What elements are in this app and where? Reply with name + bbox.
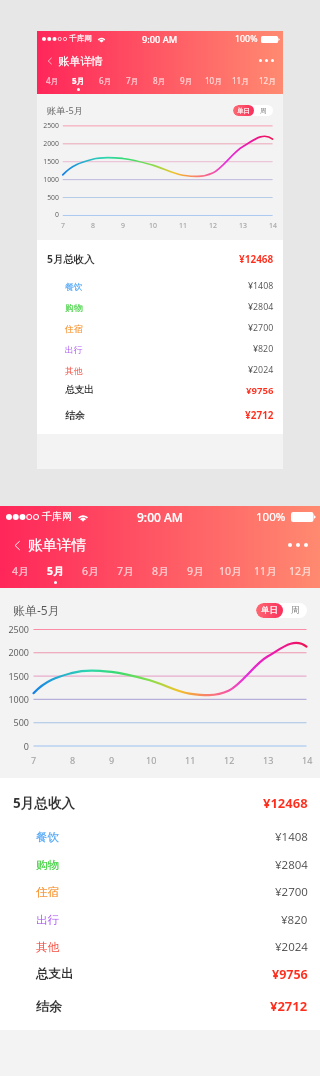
staticText: 1000 bbox=[0, 693, 29, 705]
staticText: 10 bbox=[146, 754, 157, 766]
button[interactable]: Back bbox=[37, 49, 112, 73]
staticText: 其他 bbox=[65, 365, 83, 376]
staticText: 2500 bbox=[0, 623, 29, 635]
button[interactable]: 4月 bbox=[39, 74, 65, 94]
staticText: ¥820 bbox=[253, 343, 274, 355]
staticText: 7 bbox=[31, 754, 37, 766]
button[interactable]: 6月 bbox=[92, 74, 119, 94]
button[interactable]: 结余 bbox=[37, 405, 283, 425]
button[interactable]: 10月 bbox=[213, 562, 248, 588]
button[interactable]: 结余 bbox=[0, 993, 320, 1019]
button[interactable]: 9月 bbox=[173, 74, 200, 94]
button[interactable]: 餐饮 bbox=[0, 824, 320, 850]
button[interactable]: 7月 bbox=[119, 74, 146, 94]
staticText: 5月总收入 bbox=[47, 252, 95, 266]
staticText: 7月 bbox=[117, 564, 134, 578]
button[interactable]: 出行 bbox=[0, 907, 320, 933]
staticText: ¥2024 bbox=[248, 364, 274, 376]
button[interactable]: 总支出 bbox=[37, 380, 283, 400]
staticText: 周 bbox=[260, 107, 267, 115]
staticText: ¥9756 bbox=[272, 966, 308, 983]
button[interactable]: 单日 bbox=[256, 603, 283, 618]
button[interactable]: 12月 bbox=[283, 562, 318, 588]
button[interactable]: 出行 bbox=[37, 339, 283, 359]
staticText: 11 bbox=[185, 754, 196, 766]
staticText: 2000 bbox=[37, 139, 59, 148]
button[interactable]: 9月 bbox=[178, 562, 213, 588]
staticText: 千库网 bbox=[42, 510, 72, 523]
staticText: 结余 bbox=[36, 998, 62, 1014]
button[interactable]: More options bbox=[250, 50, 283, 71]
button[interactable]: 11月 bbox=[248, 562, 283, 588]
staticText: 9月 bbox=[187, 564, 204, 578]
button[interactable]: 10月 bbox=[200, 74, 227, 94]
staticText: 千库网 bbox=[69, 34, 93, 44]
button[interactable]: 单日 bbox=[233, 105, 254, 116]
button[interactable]: 周 bbox=[283, 603, 307, 618]
staticText: 13 bbox=[263, 754, 274, 766]
button[interactable]: 11月 bbox=[227, 74, 254, 94]
staticText: 5月 bbox=[72, 75, 85, 86]
staticText: 账单-5月 bbox=[47, 104, 83, 117]
staticText: ¥2700 bbox=[275, 884, 308, 900]
staticText: 周 bbox=[291, 605, 300, 616]
button[interactable]: 7月 bbox=[108, 562, 143, 588]
staticText: ¥2804 bbox=[248, 301, 274, 313]
staticText: 12月 bbox=[259, 75, 277, 86]
button[interactable]: 5月 bbox=[38, 562, 73, 588]
staticText: ¥2024 bbox=[275, 939, 308, 955]
button[interactable]: 周 bbox=[254, 105, 273, 116]
button[interactable]: Back bbox=[0, 530, 98, 560]
staticText: 8月 bbox=[153, 75, 166, 86]
button[interactable]: 其他 bbox=[37, 360, 283, 380]
staticText: 14 bbox=[269, 221, 277, 230]
staticText: 账单详情 bbox=[28, 536, 86, 554]
staticText: 购物 bbox=[65, 302, 83, 313]
button[interactable]: 住宿 bbox=[37, 318, 283, 338]
button[interactable]: 8月 bbox=[146, 74, 173, 94]
staticText: 1500 bbox=[0, 670, 29, 682]
button[interactable]: 4月 bbox=[2, 562, 38, 588]
staticText: 总支出 bbox=[65, 384, 94, 396]
staticText: 住宿 bbox=[65, 323, 83, 334]
staticText: 2000 bbox=[0, 646, 29, 658]
staticText: ¥2712 bbox=[245, 408, 274, 422]
staticText: ¥1408 bbox=[248, 280, 274, 292]
staticText: 5月 bbox=[47, 564, 64, 578]
staticText: 12 bbox=[224, 754, 235, 766]
button[interactable]: 购物 bbox=[37, 297, 283, 317]
button[interactable]: 8月 bbox=[143, 562, 178, 588]
button[interactable]: 住宿 bbox=[0, 879, 320, 905]
staticText: 100% bbox=[256, 509, 286, 525]
staticText: 住宿 bbox=[36, 885, 59, 899]
button[interactable]: 购物 bbox=[0, 852, 320, 878]
button[interactable]: 5月 bbox=[65, 74, 92, 94]
staticText: 11月 bbox=[254, 564, 277, 578]
button[interactable]: 5月总收入 bbox=[37, 249, 283, 269]
staticText: 9月 bbox=[180, 75, 193, 86]
staticText: 5月总收入 bbox=[13, 794, 75, 812]
button[interactable]: 总支出 bbox=[0, 961, 320, 987]
staticText: 单日 bbox=[237, 107, 251, 115]
staticText: 6月 bbox=[99, 75, 112, 86]
staticText: 10 bbox=[149, 221, 157, 230]
staticText: 出行 bbox=[65, 344, 83, 355]
staticText: 总支出 bbox=[36, 966, 74, 982]
staticText: 8月 bbox=[152, 564, 169, 578]
button[interactable]: 其他 bbox=[0, 934, 320, 960]
staticText: 账单详情 bbox=[58, 54, 103, 68]
staticText: ¥2712 bbox=[270, 997, 308, 1015]
staticText: 12 bbox=[209, 221, 217, 230]
staticText: ¥12468 bbox=[263, 794, 308, 812]
staticText: 1000 bbox=[37, 175, 59, 184]
button[interactable]: 12月 bbox=[254, 74, 281, 94]
button[interactable]: 6月 bbox=[73, 562, 108, 588]
button[interactable]: More options bbox=[276, 531, 320, 559]
staticText: 9 bbox=[109, 754, 115, 766]
staticText: 12月 bbox=[289, 564, 312, 578]
staticText: 7 bbox=[61, 221, 65, 230]
button[interactable]: 餐饮 bbox=[37, 276, 283, 296]
staticText: 9 bbox=[121, 221, 125, 230]
button[interactable]: 5月总收入 bbox=[0, 790, 320, 816]
staticText: 10月 bbox=[205, 75, 223, 86]
